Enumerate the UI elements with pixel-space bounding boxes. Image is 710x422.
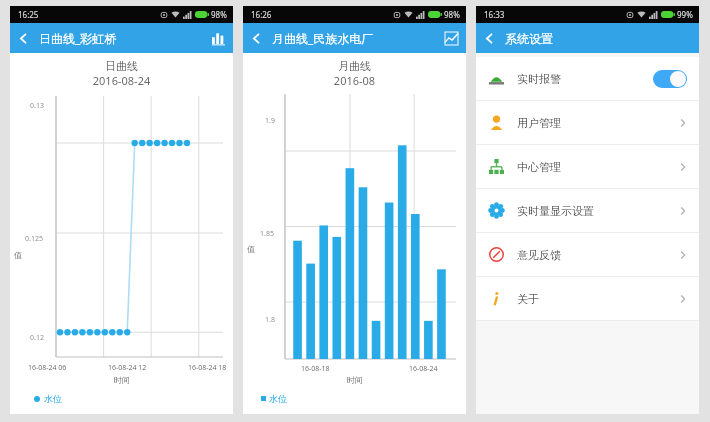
staticText: 实时报警 <box>517 72 561 86</box>
staticText: 16-08-24 <box>409 364 438 374</box>
staticText: 99% <box>677 9 693 20</box>
staticText: 16:25 <box>18 9 39 20</box>
button[interactable]: 实时量显示设置 <box>476 189 699 232</box>
button[interactable]: Chart <box>436 23 466 53</box>
button[interactable]: 用户管理 <box>476 101 699 144</box>
button[interactable]: Back <box>243 23 269 53</box>
button[interactable]: 中心管理 <box>476 145 699 188</box>
staticText: 值 <box>247 244 255 254</box>
staticText: 水位 <box>44 393 62 404</box>
staticText: 16-08-18 <box>301 364 330 374</box>
staticText: 0.13 <box>30 101 44 111</box>
staticText: 1.9 <box>265 116 275 126</box>
staticText: 1.8 <box>265 315 275 325</box>
staticText: 2016-08-24 <box>10 73 233 88</box>
staticText: 系统设置 <box>505 31 553 46</box>
staticText: 月曲线_民族水电厂 <box>272 30 374 46</box>
staticText: 16-08-24 12 <box>108 363 147 373</box>
staticText: 用户管理 <box>517 116 561 130</box>
staticText: 16:26 <box>251 9 272 20</box>
staticText: 时间 <box>114 375 130 385</box>
button[interactable]: Back <box>476 23 502 53</box>
button[interactable]: Toggle <box>653 70 687 88</box>
staticText: 16-08-24 18 <box>188 363 227 373</box>
button[interactable]: 实时报警 <box>476 57 699 100</box>
staticText: 意见反馈 <box>517 248 561 262</box>
staticText: 98% <box>211 9 227 20</box>
staticText: 水位 <box>269 393 287 404</box>
button[interactable]: 关于 <box>476 277 699 320</box>
staticText: 16:33 <box>484 9 505 20</box>
button[interactable]: 意见反馈 <box>476 233 699 276</box>
staticText: 值 <box>14 250 22 260</box>
staticText: 日曲线 <box>10 59 233 73</box>
staticText: 中心管理 <box>517 160 561 174</box>
staticText: 月曲线 <box>243 59 466 73</box>
staticText: 关于 <box>517 292 539 306</box>
staticText: 16-08-24 06 <box>28 363 67 373</box>
staticText: 0.125 <box>25 234 43 244</box>
staticText: 0.12 <box>30 333 44 343</box>
staticText: 实时量显示设置 <box>517 204 594 218</box>
staticText: 2016-08 <box>243 73 466 88</box>
button[interactable]: Back <box>10 23 36 53</box>
button[interactable]: Chart <box>203 23 233 53</box>
staticText: 日曲线_彩虹桥 <box>39 30 117 46</box>
staticText: 时间 <box>347 375 363 385</box>
staticText: 98% <box>444 9 460 20</box>
staticText: 1.85 <box>260 229 274 239</box>
